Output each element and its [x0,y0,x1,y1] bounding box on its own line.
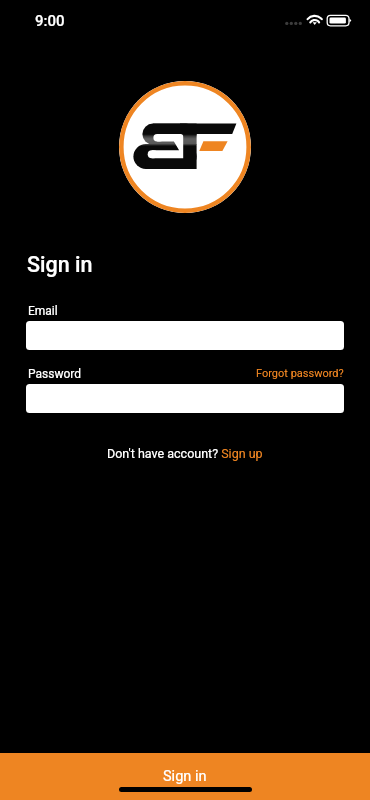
staticText: Forgot password? [256,367,344,380]
staticText: Sign in [27,252,93,277]
button[interactable]: Forgot password? [248,366,344,381]
button[interactable]: Sign in [0,753,370,800]
staticText: 9:00 [35,12,65,30]
staticText: Password [28,367,82,381]
staticText: Sign in [163,768,207,785]
staticText: Email [28,304,58,318]
button[interactable]: Don't have account? Sign up [107,446,263,461]
button[interactable]: Password field [26,384,344,413]
staticText: Don't have account? Sign up [107,446,263,461]
button[interactable]: Email field [26,321,344,350]
